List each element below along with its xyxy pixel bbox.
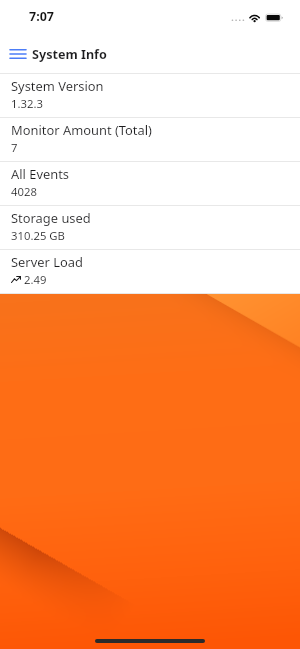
button[interactable]: Server Load xyxy=(0,250,300,294)
staticText: System Version xyxy=(11,77,104,95)
button[interactable]: System Version xyxy=(0,74,300,118)
button[interactable]: Monitor Amount (Total) xyxy=(0,118,300,162)
staticText: 7:07 xyxy=(29,8,54,25)
staticText: 4028 xyxy=(11,184,37,199)
staticText: 2.49 xyxy=(24,272,47,287)
staticText: Server Load xyxy=(11,253,83,271)
staticText: 1.32.3 xyxy=(11,96,43,111)
staticText: Storage used xyxy=(11,209,91,227)
button[interactable]: Storage used xyxy=(0,206,300,250)
staticText: All Events xyxy=(11,165,70,183)
staticText: System Info xyxy=(32,46,107,63)
staticText: Monitor Amount (Total) xyxy=(11,121,152,139)
button[interactable]: Open navigation menu xyxy=(3,40,32,68)
staticText: 310.25 GB xyxy=(11,228,65,243)
button[interactable]: All Events xyxy=(0,162,300,206)
staticText: 7 xyxy=(11,140,18,155)
